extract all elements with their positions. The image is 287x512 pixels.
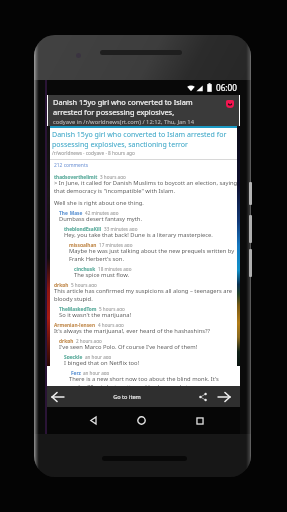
- staticText: theblondEsaKill: [64, 226, 102, 231]
- staticText: Go to item: [65, 393, 189, 401]
- staticText: 2 hours ago: [76, 338, 102, 343]
- staticText: Dumbass desert fantasy myth.: [59, 215, 143, 223]
- staticText: > In June, it called for Danish Muslims …: [54, 179, 238, 187]
- button[interactable]: thadsoverthelimit: [47, 171, 240, 207]
- button[interactable]: missgalhan: [47, 239, 240, 263]
- button[interactable]: Armenian-Jensen: [47, 319, 240, 335]
- staticText: TheMaskedTom: [59, 306, 97, 311]
- staticText: I've seen Marco Polo. Of course I've hea…: [59, 343, 198, 351]
- button[interactable]: Share: [193, 386, 213, 407]
- staticText: an hour ago: [85, 354, 112, 359]
- button[interactable]: Forward: [213, 386, 235, 407]
- button[interactable]: Back: [79, 407, 107, 434]
- staticText: Armenian-Jensen: [54, 322, 96, 327]
- button[interactable]: Danish 15yo girl who converted to Islam: [48, 95, 239, 126]
- staticText: possessing explosives, sanctioning terro…: [52, 139, 188, 149]
- staticText: 42 minutes ago: [85, 210, 119, 215]
- staticText: codyave in /r/worldnews(rt.com) / 12:12,…: [53, 118, 194, 126]
- staticText: under 30 min but pretty cool background …: [69, 383, 198, 391]
- staticText: /r/worldnews · codyave · 8 hours ago: [52, 150, 135, 157]
- staticText: 4 hours ago: [98, 322, 124, 327]
- button[interactable]: cinchusk: [47, 263, 240, 279]
- staticText: 06:00: [216, 82, 237, 93]
- staticText: arrested for possessing explosives,: [53, 107, 175, 117]
- button[interactable]: Speckle: [47, 351, 240, 367]
- staticText: Speckle: [64, 354, 83, 359]
- staticText: So it wasn't the marijuana!: [59, 311, 132, 319]
- button[interactable]: Home: [127, 407, 155, 434]
- staticText: cinchusk: [74, 266, 96, 271]
- staticText: drkph: [54, 282, 69, 287]
- button[interactable]: The_Mase: [47, 207, 240, 223]
- staticText: Well she is right about one thing.: [54, 199, 144, 207]
- staticText: drkph: [59, 338, 74, 343]
- staticText: 3 hours ago: [100, 174, 126, 179]
- staticText: It's always the marijuana!, ever heard o…: [54, 327, 211, 335]
- staticText: an hour ago: [83, 370, 110, 375]
- staticText: that democracy is "incompatible" with Is…: [54, 187, 176, 195]
- button[interactable]: Back: [47, 386, 69, 407]
- button[interactable]: theblondEsaKill: [47, 223, 240, 239]
- staticText: Frank Herbert's son.: [69, 255, 124, 263]
- staticText: I binged that on Netflix too!: [64, 359, 140, 367]
- button[interactable]: drkph: [47, 335, 240, 351]
- staticText: The spice must flow.: [74, 271, 130, 279]
- staticText: Danish 15yo girl who converted to Islam: [53, 97, 193, 107]
- staticText: thadsoverthelimit: [54, 174, 98, 179]
- staticText: 17 minutes ago: [99, 242, 133, 247]
- staticText: bloody stupid.: [54, 295, 93, 303]
- staticText: Hey, you take that back! Dune is a liter…: [64, 231, 213, 239]
- staticText: 5 hours ago: [99, 306, 125, 311]
- staticText: This article has confirmed my suspicions…: [54, 287, 233, 295]
- staticText: 18 minutes ago: [98, 266, 132, 271]
- button[interactable]: TheMaskedTom: [47, 303, 240, 319]
- staticText: 5 hours ago: [71, 282, 97, 287]
- button[interactable]: Recents: [186, 407, 214, 434]
- staticText: Maybe he was just talking about the new …: [69, 247, 235, 255]
- staticText: missgalhan: [69, 242, 97, 247]
- button[interactable]: Danish 15yo girl who converted to Islam …: [47, 128, 240, 157]
- button[interactable]: 212 comments: [54, 162, 89, 169]
- button[interactable]: drkph: [47, 279, 240, 303]
- staticText: 33 minutes ago: [104, 226, 138, 231]
- staticText: The_Mase: [59, 210, 83, 215]
- staticText: Danish 15yo girl who converted to Islam …: [52, 129, 227, 139]
- staticText: There is a new short now too about the b…: [69, 375, 219, 383]
- button[interactable]: _Ferz: [47, 367, 240, 391]
- staticText: _Ferz: [69, 370, 81, 375]
